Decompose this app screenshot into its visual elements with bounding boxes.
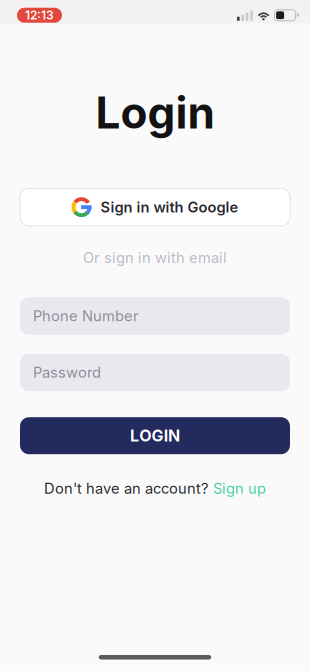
button[interactable]: Sign in with Google [20, 188, 290, 226]
staticText: 12:13 [25, 8, 54, 22]
staticText: LOGIN [130, 426, 180, 445]
button[interactable]: Password [20, 354, 290, 391]
staticText: Phone Number [33, 307, 139, 325]
staticText: Or sign in with email [83, 249, 227, 266]
button[interactable]: LOGIN [20, 417, 290, 454]
button[interactable]: Sign up [213, 480, 266, 497]
staticText: Sign up [213, 480, 266, 497]
staticText: Password [33, 364, 101, 381]
button[interactable]: Phone Number [20, 297, 290, 335]
staticText: Sign in with Google [100, 198, 238, 216]
staticText: Don't have an account? [44, 480, 208, 497]
staticText: Login [95, 86, 214, 138]
